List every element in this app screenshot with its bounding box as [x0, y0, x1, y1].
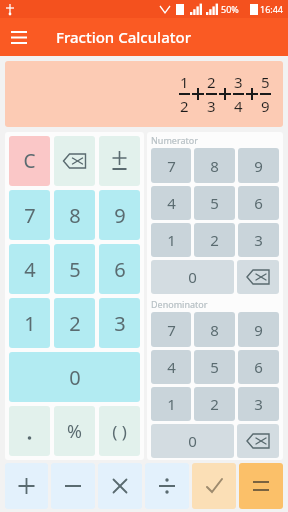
staticText: 2 [69, 310, 81, 337]
button[interactable]: 6 [238, 186, 279, 220]
staticText: 8 [210, 320, 219, 340]
staticText: 0 [188, 431, 197, 451]
staticText: 9 [261, 96, 270, 116]
button[interactable]: 0 [151, 424, 234, 458]
button[interactable]: 9 [99, 190, 140, 240]
staticText: 8 [69, 202, 81, 229]
button[interactable]: ( ) [99, 406, 140, 456]
staticText: 50% [221, 3, 239, 15]
staticText: 4 [167, 357, 176, 377]
staticText: 3 [207, 96, 216, 116]
staticText: Fraction Calculator [56, 27, 191, 47]
staticText: 4 [24, 256, 36, 283]
staticText: ( ) [112, 420, 127, 443]
button[interactable]: Multiply [98, 463, 142, 509]
staticText: 4 [234, 96, 243, 116]
button[interactable]: 5 [194, 350, 235, 384]
staticText: 5 [210, 193, 219, 213]
staticText: 6 [254, 193, 263, 213]
button[interactable]: 3 [238, 223, 279, 257]
button[interactable]: 4 [151, 186, 191, 220]
staticText: 9 [254, 156, 263, 176]
staticText: 6 [254, 357, 263, 377]
button[interactable]: C [9, 136, 50, 186]
staticText: 2 [210, 394, 219, 414]
staticText: 1 [180, 72, 189, 92]
button[interactable]: 3 [99, 298, 140, 348]
staticText: 3 [254, 394, 263, 414]
button[interactable]: Minus [51, 463, 95, 509]
button[interactable]: % [54, 406, 95, 456]
button[interactable]: 4 [9, 244, 50, 294]
staticText: 1 [24, 310, 36, 337]
staticText: 5 [210, 357, 219, 377]
staticText: 1 [167, 230, 176, 250]
staticText: 9 [254, 320, 263, 340]
staticText: 5 [69, 256, 81, 283]
button[interactable]: 5 [194, 186, 235, 220]
button[interactable]: 7 [151, 312, 191, 347]
button[interactable]: 5 [54, 244, 95, 294]
staticText: 0 [188, 267, 197, 287]
button[interactable]: Decimal point [9, 406, 50, 456]
button[interactable]: 6 [238, 350, 279, 384]
button[interactable]: Backspace [54, 136, 95, 186]
staticText: 7 [167, 156, 176, 176]
button[interactable]: Confirm [192, 463, 236, 509]
button[interactable]: 1 [151, 387, 191, 421]
staticText: 7 [167, 320, 176, 340]
button[interactable]: 4 [151, 350, 191, 384]
staticText: 7 [24, 202, 36, 229]
staticText: 6 [114, 256, 126, 283]
button[interactable]: Backspace Denominator [237, 424, 279, 458]
staticText: 1 [167, 394, 176, 414]
staticText: 2 [207, 72, 216, 92]
staticText: C [23, 148, 36, 174]
staticText: 16:44 [260, 3, 284, 15]
button[interactable]: 6 [99, 244, 140, 294]
button[interactable]: 1 [151, 223, 191, 257]
button[interactable]: 8 [194, 148, 235, 183]
button[interactable]: 0 [9, 352, 140, 402]
staticText: 3 [254, 230, 263, 250]
staticText: 3 [234, 72, 243, 92]
button[interactable]: Plus minus [99, 136, 140, 186]
staticText: 2 [180, 96, 189, 116]
button[interactable]: 2 [194, 223, 235, 257]
staticText: 4 [167, 193, 176, 213]
button[interactable]: 2 [54, 298, 95, 348]
button[interactable]: Backspace Numerator [237, 260, 279, 294]
button[interactable]: Divide [145, 463, 189, 509]
staticText: Denominator [151, 298, 208, 310]
staticText: 3 [114, 310, 126, 337]
button[interactable]: 9 [238, 312, 279, 347]
staticText: 5 [261, 72, 270, 92]
staticText: Numerator [151, 134, 198, 146]
button[interactable]: 0 [151, 260, 234, 294]
button[interactable]: 7 [9, 190, 50, 240]
button[interactable]: Menu [0, 18, 38, 56]
button[interactable]: Equals [239, 463, 283, 509]
staticText: 0 [69, 364, 81, 391]
staticText: 2 [210, 230, 219, 250]
staticText: 9 [114, 202, 126, 229]
button[interactable]: 8 [54, 190, 95, 240]
button[interactable]: Plus [5, 463, 48, 509]
button[interactable]: 8 [194, 312, 235, 347]
button[interactable]: 2 [194, 387, 235, 421]
button[interactable]: 1 [9, 298, 50, 348]
staticText: % [67, 419, 82, 444]
staticText: 8 [210, 156, 219, 176]
button[interactable]: 7 [151, 148, 191, 183]
button[interactable]: 9 [238, 148, 279, 183]
button[interactable]: 3 [238, 387, 279, 421]
